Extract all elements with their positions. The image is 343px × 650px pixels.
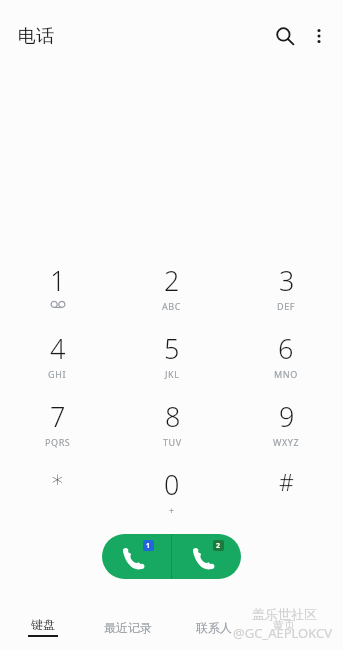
staticText: 4 xyxy=(50,330,66,367)
button[interactable]: Search xyxy=(267,18,303,54)
staticText: MNO xyxy=(274,368,298,380)
staticText: 1 xyxy=(50,262,66,299)
button[interactable]: 5 xyxy=(115,330,229,398)
staticText: 1 xyxy=(146,541,151,551)
button[interactable]: 3 xyxy=(229,262,343,330)
button[interactable]: 2 xyxy=(115,262,229,330)
button[interactable]: 7 xyxy=(0,398,115,466)
button[interactable]: 键盘 xyxy=(0,604,85,650)
staticText: JKL xyxy=(165,368,180,380)
button[interactable]: Call with SIM 2 xyxy=(172,534,241,579)
staticText: 3 xyxy=(279,262,295,299)
staticText: ∗ xyxy=(50,466,65,493)
staticText: @GC_AEPLOKCV xyxy=(233,624,333,642)
staticText: 2 xyxy=(216,541,221,551)
staticText: 5 xyxy=(164,330,180,367)
staticText: 联系人 xyxy=(196,620,232,635)
button[interactable]: 8 xyxy=(115,398,229,466)
button[interactable]: 9 xyxy=(229,398,343,466)
staticText: 黄页 xyxy=(273,618,295,632)
button[interactable]: ∗ xyxy=(0,466,115,534)
staticText: ABC xyxy=(162,300,182,312)
button[interactable]: 联系人 xyxy=(171,604,257,650)
staticText: 9 xyxy=(279,398,295,435)
staticText: 最近记录 xyxy=(104,620,152,635)
staticText: 6 xyxy=(278,330,294,367)
staticText: + xyxy=(169,504,175,516)
button[interactable]: 6 xyxy=(229,330,343,398)
button[interactable]: 0 xyxy=(115,466,229,534)
staticText: WXYZ xyxy=(273,436,300,448)
staticText: 电话 xyxy=(18,25,54,48)
staticText: TUV xyxy=(163,436,182,448)
staticText: 7 xyxy=(50,398,66,435)
button[interactable]: More options xyxy=(301,18,337,54)
staticText: PQRS xyxy=(45,436,71,448)
button[interactable]: 4 xyxy=(0,330,115,398)
button[interactable]: Call with SIM 1 xyxy=(102,534,171,579)
staticText: DEF xyxy=(277,300,296,312)
staticText: 2 xyxy=(164,262,180,299)
staticText: 键盘 xyxy=(31,617,55,632)
staticText: 0 xyxy=(164,466,180,503)
staticText: GHI xyxy=(48,368,67,380)
button[interactable]: 1 xyxy=(0,262,115,330)
staticText: 盖乐世社区 xyxy=(252,606,317,622)
button[interactable]: # xyxy=(229,466,343,534)
staticText: 8 xyxy=(165,398,181,435)
button[interactable]: 最近记录 xyxy=(85,604,171,650)
staticText: # xyxy=(279,466,294,497)
